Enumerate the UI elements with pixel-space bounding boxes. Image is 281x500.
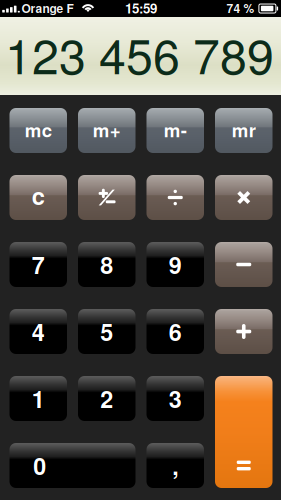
staticText: Orange F [21, 0, 73, 17]
staticText: 9 [169, 248, 182, 281]
staticText: mr [232, 116, 256, 143]
staticText: 5 [100, 315, 113, 348]
button[interactable]: Equals [215, 376, 272, 488]
button[interactable]: Plus minus [78, 175, 135, 220]
button[interactable]: 5 [78, 309, 135, 354]
button[interactable]: Decimal separator [146, 443, 204, 488]
staticText: 74 % [226, 0, 254, 17]
staticText: 123 456 789 [5, 19, 274, 88]
button[interactable]: 1 [9, 376, 67, 421]
staticText: m- [164, 116, 187, 143]
button[interactable]: 8 [78, 242, 135, 287]
staticText: c [32, 178, 45, 212]
button[interactable]: 4 [9, 309, 67, 354]
button[interactable]: Memory recall [215, 108, 272, 153]
staticText: 15:59 [125, 0, 157, 18]
staticText: 4 [32, 315, 45, 348]
button[interactable]: Divide [146, 175, 204, 220]
button[interactable]: 3 [146, 376, 204, 421]
button[interactable]: Memory clear [9, 108, 67, 153]
button[interactable]: Memory subtract [146, 108, 204, 153]
button[interactable]: Memory add [78, 108, 135, 153]
button[interactable]: 6 [146, 309, 204, 354]
button[interactable]: Multiply [215, 175, 272, 220]
button[interactable]: 9 [146, 242, 204, 287]
staticText: 2 [100, 382, 113, 415]
staticText: 7 [32, 248, 45, 281]
staticText: 8 [100, 248, 113, 281]
button[interactable]: 2 [78, 376, 135, 421]
button[interactable]: Plus [215, 309, 272, 354]
staticText: mc [25, 116, 52, 143]
staticText: 6 [169, 315, 182, 348]
staticText: 0 [33, 449, 46, 482]
button[interactable]: 0 [9, 443, 135, 488]
staticText: , [172, 449, 178, 482]
button[interactable]: Minus [215, 242, 272, 287]
staticText: m+ [93, 116, 121, 143]
button[interactable]: Clear [9, 175, 67, 220]
staticText: 3 [169, 382, 182, 415]
button[interactable]: 7 [9, 242, 67, 287]
staticText: 1 [32, 382, 45, 415]
